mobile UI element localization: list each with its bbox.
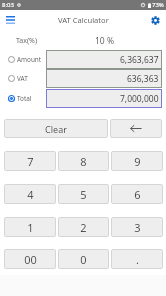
staticText: 10 % [95,35,114,47]
button[interactable]: . [111,249,163,269]
button[interactable]: 636,363 [46,69,162,88]
button[interactable]: 1 [4,217,56,237]
staticText: 2 [80,220,87,235]
button[interactable]: 4 [4,184,56,204]
button[interactable]: 3 [111,217,163,237]
button[interactable]: 0 [58,249,109,269]
staticText: 636,363 [127,73,159,85]
staticText: 1 [27,220,34,235]
staticText: 00 [24,252,37,267]
button[interactable]: Clear [4,119,108,138]
button[interactable]: Backspace [110,119,162,138]
staticText: VAT [17,74,28,83]
staticText: 8:03 [2,1,14,9]
button[interactable]: 6,363,637 [46,50,162,69]
staticText: Tax(%) [16,36,37,46]
staticText: 7 [27,154,34,169]
staticText: 3 [134,220,141,235]
button[interactable]: 9 [111,151,163,171]
staticText: VAT Calculator [58,15,109,25]
button[interactable]: 7 [4,151,56,171]
button[interactable]: 5 [58,184,109,204]
staticText: 9 [134,154,141,169]
button[interactable]: 8 [58,151,109,171]
button[interactable]: Total [8,89,44,108]
staticText: Clear [45,123,67,135]
staticText: Amount [17,55,42,64]
staticText: . [136,252,139,267]
staticText: 8 [80,154,87,169]
staticText: 7,000,000 [120,93,159,105]
button[interactable]: 7,000,000 [46,89,162,108]
button[interactable]: VAT [8,69,44,88]
staticText: 73% [152,1,164,9]
button[interactable]: 10 % [90,35,118,47]
button[interactable]: 6 [111,184,163,204]
staticText: Total [17,94,32,103]
button[interactable]: Amount [8,50,44,69]
button[interactable]: 00 [4,249,56,269]
staticText: 4 [27,187,34,202]
button[interactable]: Menu [1,11,19,29]
staticText: 6 [134,187,141,202]
staticText: 6,363,637 [120,54,159,66]
button[interactable]: 2 [58,217,109,237]
staticText: 0 [80,252,87,267]
staticText: 5 [80,187,87,202]
button[interactable]: Settings [147,12,163,28]
